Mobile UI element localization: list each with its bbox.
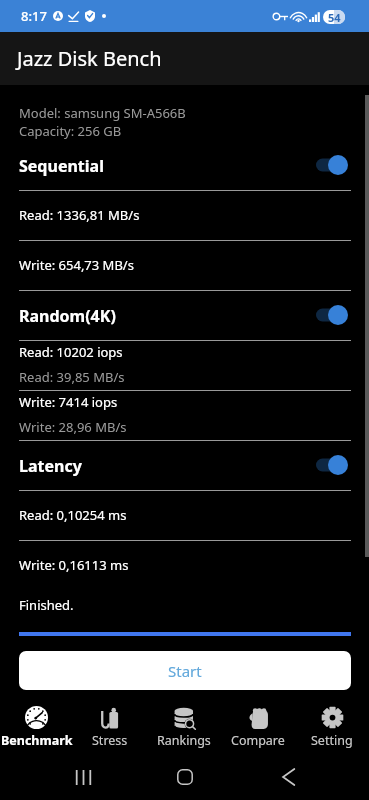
button[interactable]: Stress xyxy=(73,702,147,758)
button[interactable]: Rankings xyxy=(147,702,221,758)
button[interactable]: Read: 0,10254 ms xyxy=(0,490,369,540)
button[interactable]: Write: 0,16113 ms xyxy=(0,540,369,590)
button[interactable]: Random(4K) xyxy=(0,295,369,340)
button[interactable]: Back xyxy=(264,756,312,798)
staticText: Benchmark xyxy=(1,732,73,749)
staticText: Sequential xyxy=(19,155,104,177)
staticText: Compare xyxy=(231,732,285,749)
button[interactable]: Recents xyxy=(59,756,107,798)
button[interactable]: Benchmark xyxy=(0,702,73,758)
staticText: 8:17 xyxy=(21,7,47,25)
button[interactable]: Setting xyxy=(295,702,369,758)
staticText: Write: 654,73 MB/s xyxy=(19,256,134,274)
staticText: Start xyxy=(168,661,202,681)
button[interactable]: Latency xyxy=(0,445,369,490)
staticText: Latency xyxy=(19,455,82,477)
button[interactable]: Read: 1336,81 MB/s xyxy=(0,190,369,240)
staticText: Read: 10202 iops xyxy=(19,343,123,361)
staticText: Finished. xyxy=(19,596,74,614)
staticText: Rankings xyxy=(157,732,211,749)
staticText: Random(4K) xyxy=(19,305,116,327)
staticText: Read: 1336,81 MB/s xyxy=(19,206,140,224)
staticText: Stress xyxy=(92,732,128,749)
button[interactable]: Read: 10202 iops xyxy=(0,340,369,390)
button[interactable]: Compare xyxy=(221,702,295,758)
button[interactable]: Finished. xyxy=(0,590,369,620)
staticText: Read: 39,85 MB/s xyxy=(19,368,125,386)
button[interactable]: Start xyxy=(19,651,351,690)
button[interactable]: Sequential xyxy=(0,145,369,190)
button[interactable]: Write: 654,73 MB/s xyxy=(0,240,369,290)
staticText: Read: 0,10254 ms xyxy=(19,506,127,524)
staticText: Capacity: 256 GB xyxy=(19,122,122,140)
button[interactable]: Write: 7414 iops xyxy=(0,390,369,440)
button[interactable]: Home xyxy=(161,756,209,798)
staticText: Model: samsung SM-A566B xyxy=(19,104,186,122)
staticText: Setting xyxy=(311,732,353,749)
staticText: Write: 0,16113 ms xyxy=(19,556,129,574)
staticText: Jazz Disk Bench xyxy=(17,45,162,72)
staticText: Write: 28,96 MB/s xyxy=(19,418,127,436)
staticText: Write: 7414 iops xyxy=(19,393,118,411)
staticText: 54 xyxy=(328,10,341,24)
